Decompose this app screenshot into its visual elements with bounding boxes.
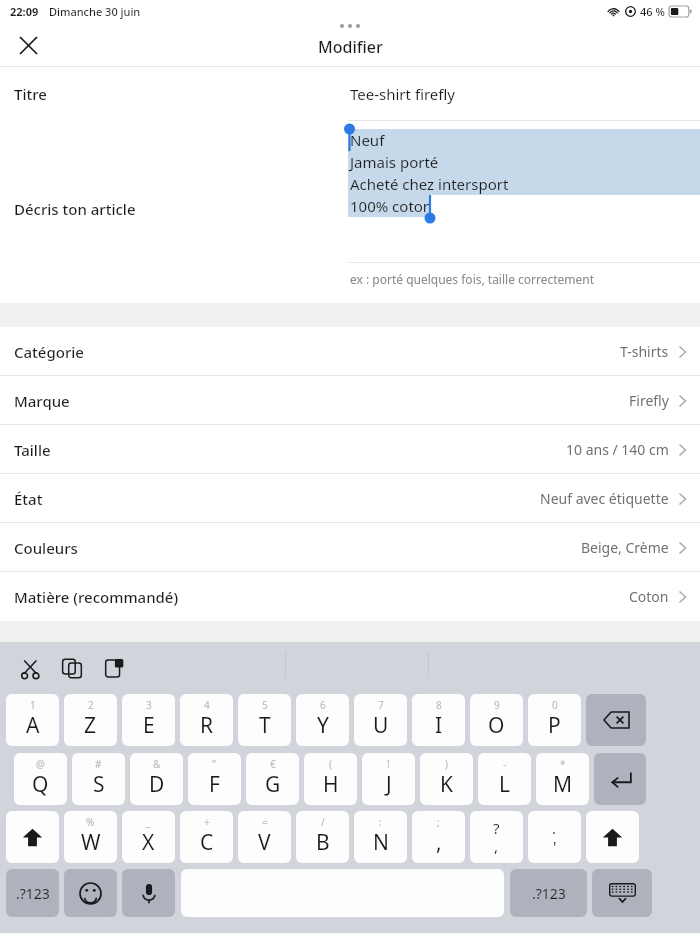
- staticText: +: [204, 815, 210, 829]
- staticText: Coton: [629, 587, 669, 606]
- button[interactable]: (: [304, 753, 357, 805]
- staticText: ?: [493, 818, 500, 838]
- button[interactable]: Catégorie: [0, 327, 700, 376]
- staticText: X: [142, 828, 155, 857]
- button[interactable]: Fermer: [8, 25, 48, 65]
- staticText: C: [200, 828, 214, 857]
- button[interactable]: *: [536, 753, 589, 805]
- button[interactable]: Majuscule: [6, 811, 59, 863]
- staticText: R: [200, 711, 214, 740]
- staticText: (: [329, 757, 332, 771]
- button[interactable]: Copier: [54, 650, 90, 686]
- staticText: #: [95, 757, 102, 771]
- staticText: L: [499, 770, 511, 799]
- staticText: €: [270, 757, 276, 771]
- staticText: Neuf: [350, 130, 385, 150]
- button[interactable]: .?123: [510, 869, 587, 917]
- staticText: P: [548, 711, 561, 740]
- staticText: Modifier: [318, 36, 383, 58]
- button[interactable]: ;: [412, 811, 465, 863]
- button[interactable]: !: [362, 753, 415, 805]
- staticText: ;: [437, 815, 440, 829]
- staticText: Dimanche 30 juin: [49, 4, 141, 19]
- button[interactable]: État: [0, 474, 700, 523]
- button[interactable]: Emoji: [64, 869, 117, 917]
- button[interactable]: Masquer le clavier: [592, 869, 652, 917]
- staticText: G: [265, 770, 281, 799]
- button[interactable]: Dictée: [122, 869, 175, 917]
- button[interactable]: ": [188, 753, 241, 805]
- button[interactable]: #: [72, 753, 125, 805]
- button[interactable]: Entrée: [594, 753, 646, 805]
- staticText: -: [503, 757, 507, 771]
- staticText: :: [379, 815, 382, 829]
- staticText: ': [553, 836, 557, 856]
- button[interactable]: -: [478, 753, 531, 805]
- button[interactable]: 1: [6, 694, 59, 746]
- staticText: ex : porté quelques fois, taille correct…: [350, 271, 700, 287]
- button[interactable]: 3: [122, 694, 175, 746]
- button[interactable]: Coller: [96, 650, 132, 686]
- staticText: =: [262, 815, 268, 829]
- staticText: H: [323, 770, 339, 799]
- button[interactable]: =: [238, 811, 291, 863]
- staticText: Tee-shirt firefly: [350, 84, 455, 104]
- staticText: Marque: [14, 391, 70, 411]
- button[interactable]: Marque: [0, 376, 700, 425]
- staticText: N: [373, 828, 389, 857]
- staticText: Acheté chez intersport: [350, 174, 509, 194]
- button[interactable]: Couper: [12, 650, 48, 686]
- staticText: 5: [262, 698, 268, 712]
- button[interactable]: 9: [470, 694, 523, 746]
- button[interactable]: %: [64, 811, 117, 863]
- button[interactable]: @: [14, 753, 67, 805]
- button[interactable]: Retour arrière: [586, 694, 646, 746]
- button[interactable]: .: [528, 811, 581, 863]
- button[interactable]: 4: [180, 694, 233, 746]
- button[interactable]: .?123: [6, 869, 59, 917]
- staticText: U: [373, 711, 389, 740]
- staticText: État: [14, 489, 43, 509]
- staticText: 1: [30, 698, 36, 712]
- button[interactable]: _: [122, 811, 175, 863]
- staticText: 4: [204, 698, 210, 712]
- button[interactable]: 0: [528, 694, 581, 746]
- button[interactable]: Matière (recommandé): [0, 572, 700, 621]
- staticText: D: [149, 770, 165, 799]
- button[interactable]: €: [246, 753, 299, 805]
- staticText: 100% coton: [350, 196, 433, 216]
- staticText: J: [386, 770, 392, 799]
- staticText: Neuf avec étiquette: [540, 489, 669, 508]
- button[interactable]: 2: [64, 694, 117, 746]
- staticText: M: [553, 770, 573, 799]
- staticText: 22:09: [10, 4, 39, 19]
- button[interactable]: +: [180, 811, 233, 863]
- button[interactable]: &: [130, 753, 183, 805]
- staticText: K: [440, 770, 453, 799]
- staticText: ,: [494, 836, 499, 856]
- staticText: 7: [378, 698, 384, 712]
- button[interactable]: ): [420, 753, 473, 805]
- button[interactable]: 5: [238, 694, 291, 746]
- staticText: .?123: [16, 884, 50, 903]
- staticText: O: [488, 711, 505, 740]
- button[interactable]: Couleurs: [0, 523, 700, 572]
- staticText: 8: [436, 698, 442, 712]
- button[interactable]: Majuscule droite: [586, 811, 639, 863]
- staticText: 10 ans / 140 cm: [566, 440, 669, 459]
- staticText: Z: [84, 711, 97, 740]
- button[interactable]: ?: [470, 811, 523, 863]
- button[interactable]: 7: [354, 694, 407, 746]
- staticText: A: [26, 711, 40, 740]
- staticText: Taille: [14, 440, 51, 460]
- staticText: Q: [32, 770, 49, 799]
- button[interactable]: Taille: [0, 425, 700, 474]
- button[interactable]: /: [296, 811, 349, 863]
- staticText: .?123: [532, 884, 566, 903]
- staticText: 46 %: [640, 4, 665, 19]
- button[interactable]: :: [354, 811, 407, 863]
- button[interactable]: 8: [412, 694, 465, 746]
- staticText: ): [445, 757, 448, 771]
- button[interactable]: 6: [296, 694, 349, 746]
